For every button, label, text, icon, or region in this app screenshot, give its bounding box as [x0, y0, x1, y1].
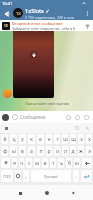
staticText: ц: [12, 136, 16, 143]
button[interactable]: Comma: [23, 170, 29, 182]
button[interactable]: Settings: [75, 126, 79, 130]
button[interactable]: д: [70, 146, 76, 156]
staticText: й: [3, 136, 7, 143]
button[interactable]: ж: [78, 146, 84, 156]
button[interactable]: ь: [58, 158, 64, 168]
button[interactable]: Back: [66, 186, 80, 200]
button[interactable]: п: [37, 146, 44, 156]
staticText: п: [39, 148, 43, 155]
button[interactable]: Shift: [1, 158, 10, 168]
button[interactable]: й: [1, 134, 8, 144]
staticText: х: [88, 136, 91, 143]
staticText: Присылайте свои здания: [25, 101, 69, 106]
button[interactable]: Emoji: [12, 114, 18, 120]
button[interactable]: щ: [70, 134, 76, 144]
button[interactable]: к: [28, 134, 35, 144]
button[interactable]: Attach: [73, 113, 82, 122]
button[interactable]: х: [86, 134, 92, 144]
button[interactable]: ы: [10, 146, 17, 156]
staticText: и: [43, 160, 47, 167]
button[interactable]: л: [62, 146, 68, 156]
button[interactable]: а: [28, 146, 35, 156]
button[interactable]: Camera: [82, 113, 91, 122]
button[interactable]: н: [46, 134, 52, 144]
staticText: ,: [25, 173, 27, 180]
button[interactable]: ф: [1, 146, 8, 156]
button[interactable]: Search: [85, 126, 89, 130]
staticText: ч: [20, 160, 23, 167]
button[interactable]: я: [12, 158, 17, 168]
staticText: ы: [12, 148, 16, 155]
button[interactable]: г: [54, 134, 60, 144]
staticText: .: [75, 173, 77, 180]
staticText: р: [47, 148, 51, 155]
button[interactable]: э: [86, 146, 92, 156]
button[interactable]: ?123: [1, 170, 13, 182]
button[interactable]: Download: [13, 31, 54, 98]
staticText: у: [21, 136, 24, 143]
button[interactable]: Enter: [81, 170, 92, 182]
staticText: ь: [60, 160, 63, 167]
staticText: 2 194 подписчика, 220 в сети: [25, 15, 75, 20]
staticText: щ: [71, 136, 76, 143]
staticText: Бездепозитное сообщение: [12, 21, 63, 26]
staticText: Русский: [44, 174, 58, 179]
button[interactable]: м: [34, 158, 40, 168]
button[interactable]: Backspace: [82, 158, 92, 168]
staticText: 1X: [16, 11, 21, 16]
staticText: э: [88, 148, 91, 155]
button[interactable]: More options: [81, 7, 93, 19]
staticText: з: [80, 136, 83, 143]
button[interactable]: 1X: [0, 20, 93, 31]
button[interactable]: в: [19, 146, 26, 156]
button[interactable]: Emoji: [15, 170, 21, 182]
staticText: к: [30, 136, 33, 143]
button[interactable]: у: [19, 134, 26, 144]
staticText: 1xSlots ✓: [25, 7, 50, 14]
button[interactable]: р: [46, 146, 52, 156]
button[interactable]: т: [50, 158, 56, 168]
staticText: ф: [3, 148, 7, 155]
staticText: т: [52, 160, 55, 167]
staticText: г: [56, 136, 59, 143]
staticText: ж: [79, 148, 83, 155]
button[interactable]: Sticker: [64, 113, 73, 122]
staticText: в: [21, 148, 24, 155]
staticText: 1X: [4, 24, 8, 28]
button[interactable]: е: [37, 134, 44, 144]
button[interactable]: з: [78, 134, 84, 144]
staticText: Забирайте себе соединение, себя в б: [12, 26, 76, 31]
staticText: н: [47, 136, 51, 143]
staticText: е: [39, 136, 42, 143]
button[interactable]: с: [26, 158, 32, 168]
staticText: о: [56, 148, 59, 155]
button[interactable]: Period: [73, 170, 79, 182]
staticText: с: [28, 160, 31, 167]
button[interactable]: Home: [40, 186, 54, 200]
staticText: л: [64, 148, 67, 155]
staticText: м: [35, 160, 39, 167]
staticText: я: [13, 160, 16, 167]
button[interactable]: ц: [10, 134, 17, 144]
button[interactable]: ч: [19, 158, 24, 168]
staticText: Сообщение: [20, 114, 64, 120]
staticText: ?123: [3, 174, 11, 179]
staticText: ш: [63, 136, 68, 143]
button[interactable]: Русский: [31, 170, 71, 182]
button[interactable]: о: [54, 146, 60, 156]
other: Download: [30, 51, 37, 58]
staticText: д: [71, 148, 75, 155]
button[interactable]: Pinned message: [82, 21, 92, 31]
button[interactable]: и: [42, 158, 48, 168]
button[interactable]: ю: [74, 158, 80, 168]
staticText: а: [30, 148, 33, 155]
button[interactable]: ш: [62, 134, 68, 144]
button[interactable]: Voice message: [2, 114, 9, 121]
button[interactable]: Back: [0, 7, 13, 20]
staticText: ю: [75, 160, 79, 167]
staticText: б: [68, 160, 71, 167]
button[interactable]: Recents: [13, 186, 27, 200]
button[interactable]: б: [66, 158, 72, 168]
staticText: 10:41: [2, 1, 13, 6]
